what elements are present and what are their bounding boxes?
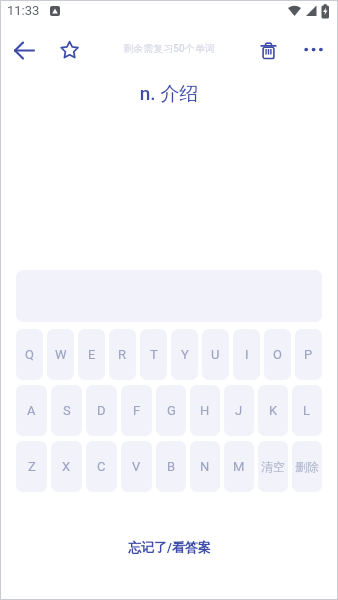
staticText: I — [245, 347, 249, 362]
button[interactable]: H — [190, 385, 220, 436]
button[interactable]: P — [295, 329, 322, 380]
button[interactable]: V — [121, 441, 152, 492]
button[interactable]: R — [109, 329, 136, 380]
staticText: 剩余需复习50个单词 — [0, 42, 338, 55]
button[interactable]: 清空 — [258, 441, 288, 492]
staticText: T — [150, 347, 158, 362]
staticText: 删除 — [295, 459, 319, 474]
staticText: A — [27, 403, 36, 418]
button[interactable]: F — [121, 385, 152, 436]
button[interactable] — [249, 32, 286, 69]
staticText: E — [88, 347, 96, 362]
staticText: Z — [28, 459, 36, 474]
staticText: U — [211, 347, 220, 362]
button[interactable]: A — [16, 385, 47, 436]
staticText: Q — [25, 347, 34, 362]
button[interactable]: 忘记了/看答案 — [0, 530, 338, 564]
button[interactable]: X — [51, 441, 82, 492]
staticText: 忘记了/看答案 — [128, 539, 211, 555]
button[interactable]: L — [292, 385, 322, 436]
staticText: R — [118, 347, 127, 362]
staticText: W — [55, 347, 67, 362]
staticText: V — [132, 459, 141, 474]
button[interactable]: Q — [16, 329, 43, 380]
button[interactable]: B — [156, 441, 186, 492]
staticText: F — [133, 403, 141, 418]
staticText: D — [97, 403, 106, 418]
staticText: 11:33 — [7, 3, 40, 18]
staticText: M — [233, 459, 245, 474]
staticText: B — [167, 459, 176, 474]
button[interactable]: 删除 — [292, 441, 322, 492]
button[interactable]: U — [202, 329, 229, 380]
button[interactable]: J — [224, 385, 254, 436]
staticText: 清空 — [261, 459, 285, 474]
button[interactable]: S — [51, 385, 82, 436]
staticText: X — [62, 459, 71, 474]
button[interactable]: D — [86, 385, 117, 436]
button[interactable] — [6, 32, 43, 69]
staticText: L — [303, 403, 311, 418]
staticText: S — [63, 403, 71, 418]
staticText: N — [200, 459, 210, 474]
button[interactable]: C — [86, 441, 117, 492]
staticText: J — [235, 403, 243, 418]
button[interactable]: Z — [16, 441, 47, 492]
button[interactable]: I — [233, 329, 260, 380]
button[interactable]: M — [224, 441, 254, 492]
button[interactable]: G — [156, 385, 186, 436]
staticText: K — [269, 403, 278, 418]
button[interactable]: Y — [171, 329, 198, 380]
button[interactable] — [295, 32, 332, 69]
button[interactable]: E — [78, 329, 105, 380]
staticText: C — [97, 459, 106, 474]
button[interactable]: T — [140, 329, 167, 380]
staticText: G — [167, 403, 176, 418]
button[interactable]: W — [47, 329, 74, 380]
button[interactable]: O — [264, 329, 291, 380]
staticText: n. 介绍 — [0, 82, 338, 106]
staticText: Y — [181, 347, 189, 362]
button[interactable] — [51, 32, 88, 69]
staticText: H — [200, 403, 210, 418]
staticText: O — [273, 347, 282, 362]
staticText: P — [304, 347, 313, 362]
button[interactable]: N — [190, 441, 220, 492]
button[interactable]: K — [258, 385, 288, 436]
